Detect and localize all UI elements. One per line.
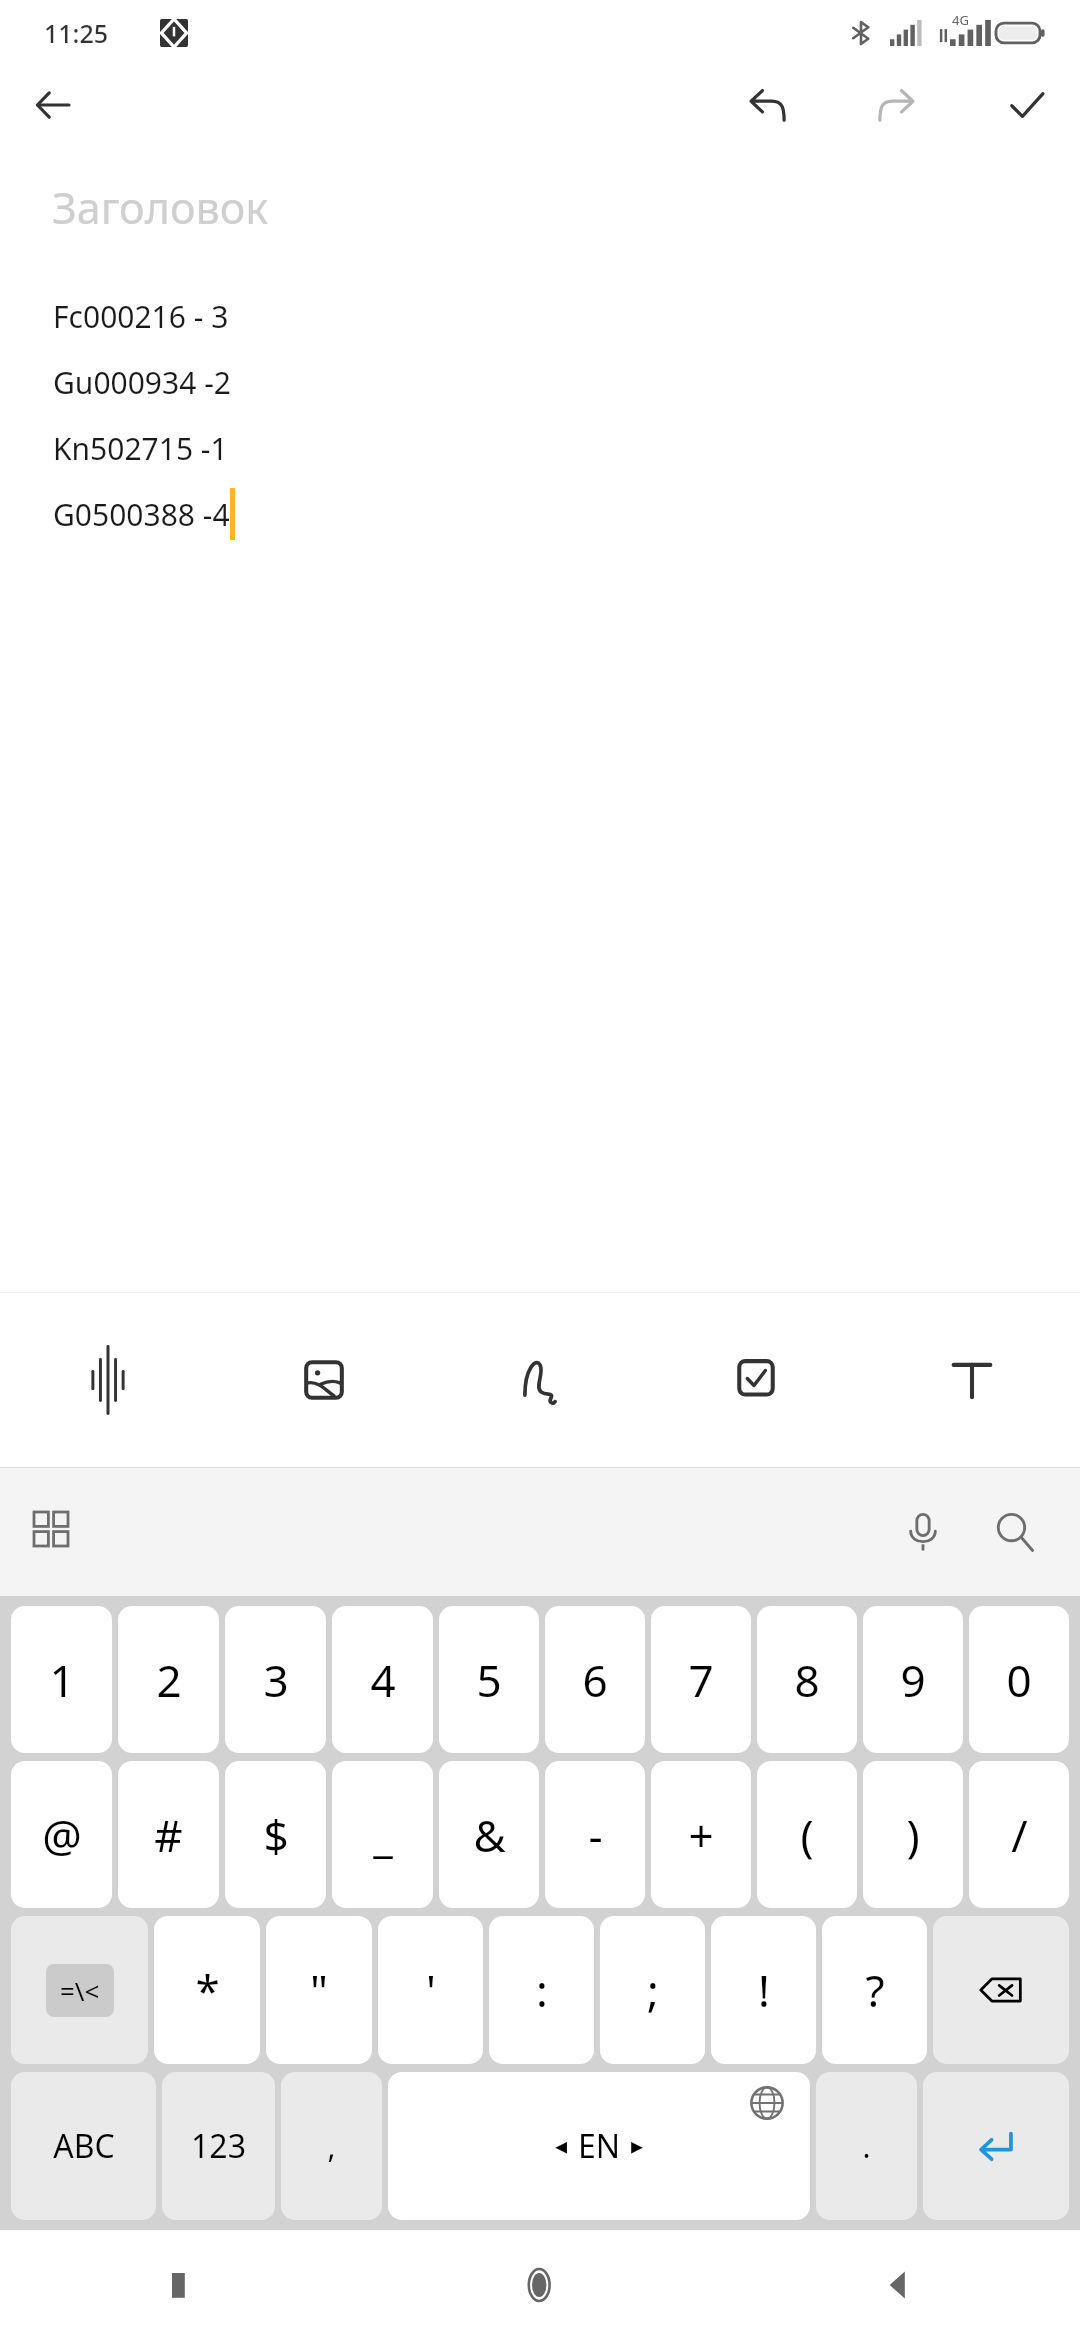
staticText: * xyxy=(195,1960,220,2020)
staticText: 2 xyxy=(156,1650,182,1710)
button[interactable]: 123 xyxy=(162,2072,275,2220)
button[interactable]: + xyxy=(651,1761,751,1908)
button[interactable]: ' xyxy=(378,1916,483,2064)
button[interactable]: 6 xyxy=(545,1606,645,1753)
staticText: 123 xyxy=(191,2124,246,2168)
staticText: _ xyxy=(373,1805,393,1865)
button[interactable]: . xyxy=(816,2072,917,2220)
staticText: G0500388 -4 xyxy=(53,494,230,535)
button[interactable]: * xyxy=(154,1916,260,2064)
staticText: @ xyxy=(42,1805,82,1865)
staticText: ! xyxy=(758,1960,770,2020)
staticText: ) xyxy=(906,1805,920,1865)
staticText: . xyxy=(862,2126,871,2167)
staticText: 1 xyxy=(49,1650,75,1710)
staticText: - xyxy=(588,1805,603,1865)
button[interactable]: / xyxy=(969,1761,1069,1908)
staticText: & xyxy=(473,1805,506,1865)
button[interactable]: 0 xyxy=(969,1606,1069,1753)
button[interactable]: Image xyxy=(216,1293,432,1467)
button[interactable]: Undo xyxy=(736,74,798,136)
staticText: EN xyxy=(578,2124,621,2168)
button[interactable]: 9 xyxy=(863,1606,963,1753)
staticText: $ xyxy=(263,1805,289,1865)
button[interactable]: ABC xyxy=(11,2072,156,2220)
staticText: / xyxy=(1011,1805,1028,1865)
staticText: 8 xyxy=(794,1650,820,1710)
button[interactable]: ) xyxy=(863,1761,963,1908)
staticText: ( xyxy=(800,1805,814,1865)
button[interactable]: _ xyxy=(332,1761,433,1908)
staticText: ◂ xyxy=(555,2132,568,2160)
button[interactable]: Enter xyxy=(923,2072,1069,2220)
button[interactable]: Symbols xyxy=(11,1916,148,2064)
staticText: Kn502715 -1 xyxy=(53,428,228,469)
button[interactable]: Space xyxy=(388,2072,810,2220)
staticText: 4 xyxy=(370,1650,396,1710)
button[interactable]: Redo xyxy=(866,74,928,136)
button[interactable]: " xyxy=(266,1916,372,2064)
staticText: 7 xyxy=(688,1650,714,1710)
staticText: : xyxy=(536,1960,548,2020)
staticText: + xyxy=(688,1805,714,1865)
staticText: , xyxy=(327,2126,336,2167)
staticText: ' xyxy=(426,1960,436,2020)
button[interactable]: Search xyxy=(976,1493,1054,1571)
button[interactable]: 1 xyxy=(11,1606,112,1753)
button[interactable]: ! xyxy=(711,1916,816,2064)
button[interactable]: Back xyxy=(720,2230,1080,2340)
button[interactable]: Back xyxy=(22,74,84,136)
staticText: Gu000934 -2 xyxy=(53,362,231,403)
button[interactable]: & xyxy=(439,1761,539,1908)
button[interactable]: Checklist xyxy=(648,1293,864,1467)
staticText: ? xyxy=(865,1960,885,2020)
staticText: ABC xyxy=(53,2124,115,2168)
button[interactable]: $ xyxy=(225,1761,326,1908)
staticText: ▸ xyxy=(631,2132,644,2160)
staticText: Fc000216 - 3 xyxy=(53,296,229,337)
button[interactable]: 2 xyxy=(118,1606,219,1753)
staticText: 9 xyxy=(900,1650,926,1710)
button[interactable]: Home xyxy=(360,2230,720,2340)
staticText: 5 xyxy=(476,1650,502,1710)
staticText: =\< xyxy=(60,1973,100,2008)
button[interactable]: , xyxy=(281,2072,382,2220)
button[interactable]: : xyxy=(489,1916,594,2064)
button[interactable]: 8 xyxy=(757,1606,857,1753)
button[interactable]: Fc000216 - 3 xyxy=(0,283,1080,349)
staticText: 11:25 xyxy=(44,16,109,50)
staticText: " xyxy=(310,1960,328,2020)
button[interactable]: G0500388 -4 xyxy=(0,481,1080,547)
staticText: 3 xyxy=(263,1650,289,1710)
button[interactable]: ? xyxy=(822,1916,927,2064)
button[interactable]: Save xyxy=(996,74,1058,136)
button[interactable]: Clipboard xyxy=(18,1496,90,1568)
button[interactable]: Kn502715 -1 xyxy=(0,415,1080,481)
button[interactable]: Text style xyxy=(864,1293,1080,1467)
staticText: 6 xyxy=(582,1650,608,1710)
button[interactable]: @ xyxy=(11,1761,112,1908)
button[interactable]: ; xyxy=(600,1916,705,2064)
staticText: ; xyxy=(647,1960,659,2020)
staticText: 0 xyxy=(1006,1650,1032,1710)
staticText: 4G xyxy=(952,11,969,29)
button[interactable]: Заголовок xyxy=(52,178,269,237)
button[interactable]: Draw xyxy=(432,1293,648,1467)
button[interactable]: - xyxy=(545,1761,645,1908)
staticText: # xyxy=(154,1805,183,1865)
button[interactable]: Backspace xyxy=(933,1916,1069,2064)
button[interactable]: Voice input xyxy=(884,1493,962,1571)
button[interactable]: 5 xyxy=(439,1606,539,1753)
button[interactable]: Gu000934 -2 xyxy=(0,349,1080,415)
button[interactable]: Recents xyxy=(0,2230,360,2340)
button[interactable]: 7 xyxy=(651,1606,751,1753)
button[interactable]: ( xyxy=(757,1761,857,1908)
button[interactable]: 3 xyxy=(225,1606,326,1753)
button[interactable]: Audio xyxy=(0,1293,216,1467)
button[interactable]: # xyxy=(118,1761,219,1908)
button[interactable]: 4 xyxy=(332,1606,433,1753)
